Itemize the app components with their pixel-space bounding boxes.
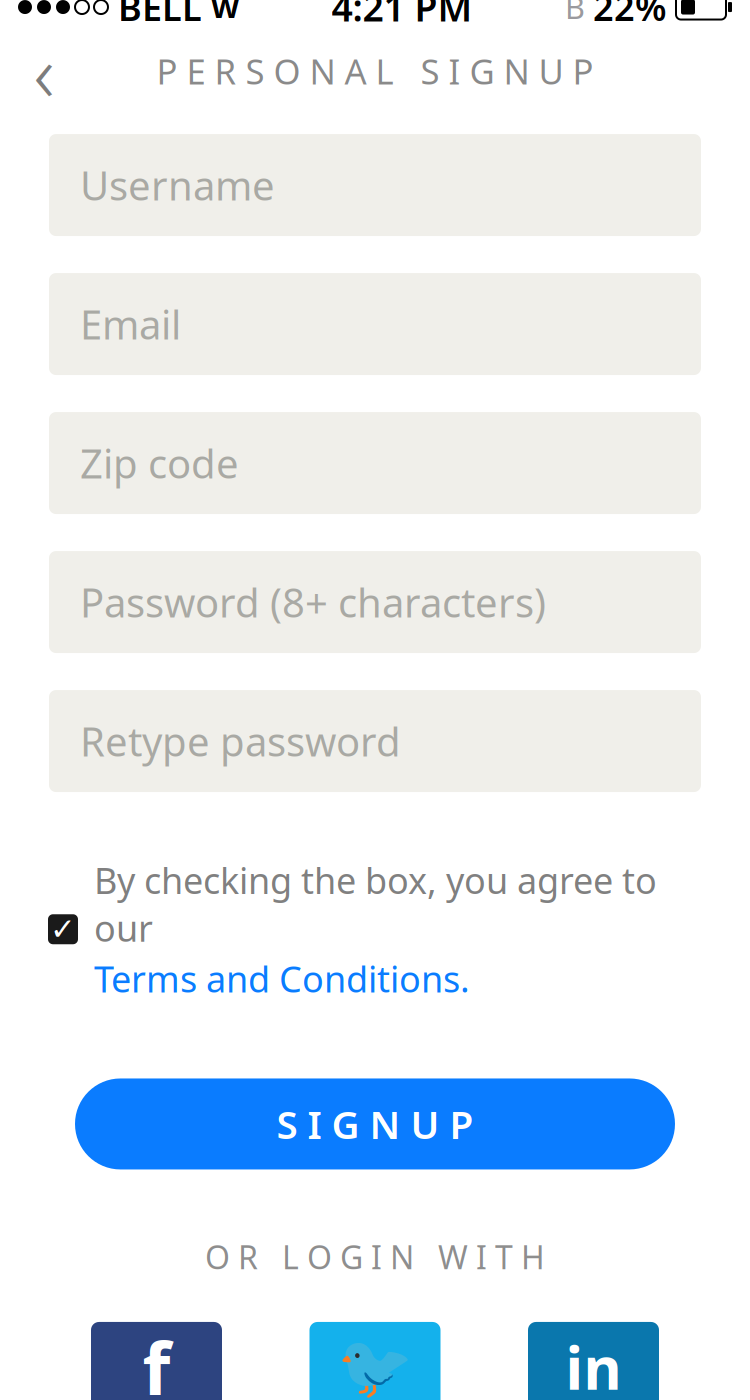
staticText: By checking the box, you agree to our [94, 856, 657, 952]
staticText: P E R S O N A L S I G N U P [156, 48, 593, 94]
button[interactable]: Sign in with LinkedIn [528, 1322, 659, 1400]
button[interactable]: Retype password [49, 690, 701, 792]
staticText: W [211, 0, 239, 27]
staticText: Password (8+ characters) [80, 575, 546, 629]
staticText: Terms and Conditions. [94, 955, 470, 1002]
staticText: ✓ [50, 912, 76, 947]
button[interactable]: Email [49, 273, 701, 375]
staticText: 🐦 [337, 1332, 413, 1400]
button[interactable]: Agree to terms and conditions [40, 906, 86, 952]
button[interactable]: Terms and Conditions. [94, 955, 470, 1002]
button[interactable]: Sign in with Twitter [309, 1322, 440, 1400]
staticText: O R L O G I N W I T H [205, 1235, 545, 1278]
button[interactable]: Sign in with Facebook [91, 1322, 222, 1400]
staticText: f [142, 1319, 170, 1400]
staticText: Email [80, 297, 181, 351]
staticText: ‹ [33, 18, 54, 124]
staticText: B [565, 0, 585, 27]
staticText: BELL [118, 0, 202, 31]
button[interactable]: Password (8+ characters) [49, 551, 701, 653]
staticText: Zip code [80, 436, 239, 490]
button[interactable]: Back [12, 39, 76, 103]
staticText: Retype password [80, 714, 401, 768]
staticText: 22% [593, 0, 667, 31]
staticText: S I G N U P [276, 1098, 473, 1150]
staticText: Username [80, 158, 275, 212]
staticText: in [565, 1328, 621, 1400]
button[interactable]: Zip code [49, 412, 701, 514]
button[interactable]: Username [49, 134, 701, 236]
staticText: 4:21 PM [331, 0, 472, 32]
button[interactable]: S I G N U P [75, 1078, 675, 1169]
